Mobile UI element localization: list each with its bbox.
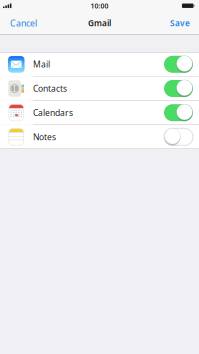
staticText: Cancel — [10, 17, 37, 29]
button[interactable]: Cancel — [5, 14, 42, 32]
staticText: Mail — [33, 58, 50, 70]
button[interactable]: Contacts — [0, 77, 199, 100]
staticText: Contacts — [33, 83, 67, 94]
staticText: Calendars — [33, 107, 73, 118]
staticText: Save — [170, 17, 190, 29]
button[interactable]: Save — [166, 14, 194, 32]
staticText: Notes — [33, 131, 56, 143]
button[interactable]: Notes — [0, 125, 199, 149]
staticText: Gmail — [88, 17, 111, 29]
button[interactable]: Mail — [0, 52, 199, 76]
button[interactable]: Calendars — [0, 101, 199, 124]
staticText: 10:00 — [90, 1, 108, 10]
